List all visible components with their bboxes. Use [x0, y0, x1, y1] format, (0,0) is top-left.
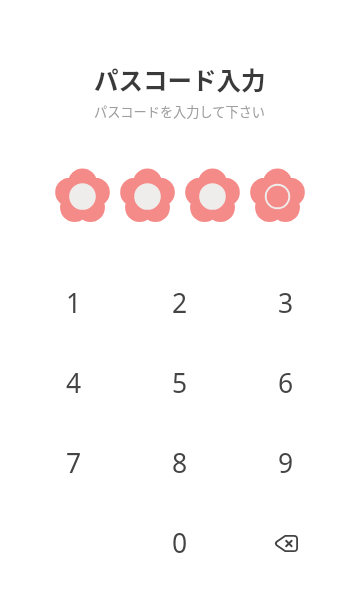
- button[interactable]: 5: [127, 343, 233, 423]
- staticText: 5: [172, 365, 188, 401]
- staticText: 9: [278, 445, 294, 481]
- staticText: パスコードを入力して下さい: [94, 102, 266, 121]
- staticText: 6: [278, 365, 294, 401]
- button[interactable]: Backspace: [233, 503, 339, 583]
- staticText: 4: [66, 365, 82, 401]
- button[interactable]: 3: [233, 263, 339, 343]
- button[interactable]: 2: [127, 263, 233, 343]
- button[interactable]: 6: [233, 343, 339, 423]
- staticText: 2: [172, 285, 188, 321]
- staticText: 8: [172, 445, 188, 481]
- button[interactable]: 0: [127, 503, 233, 583]
- staticText: パスコード入力: [94, 62, 266, 97]
- staticText: 3: [278, 285, 294, 321]
- button[interactable]: 9: [233, 423, 339, 503]
- button[interactable]: 7: [21, 423, 127, 503]
- button[interactable]: 8: [127, 423, 233, 503]
- staticText: 0: [172, 525, 188, 561]
- staticText: 7: [66, 445, 82, 481]
- button[interactable]: 4: [21, 343, 127, 423]
- staticText: 1: [66, 285, 82, 321]
- button[interactable]: 1: [21, 263, 127, 343]
